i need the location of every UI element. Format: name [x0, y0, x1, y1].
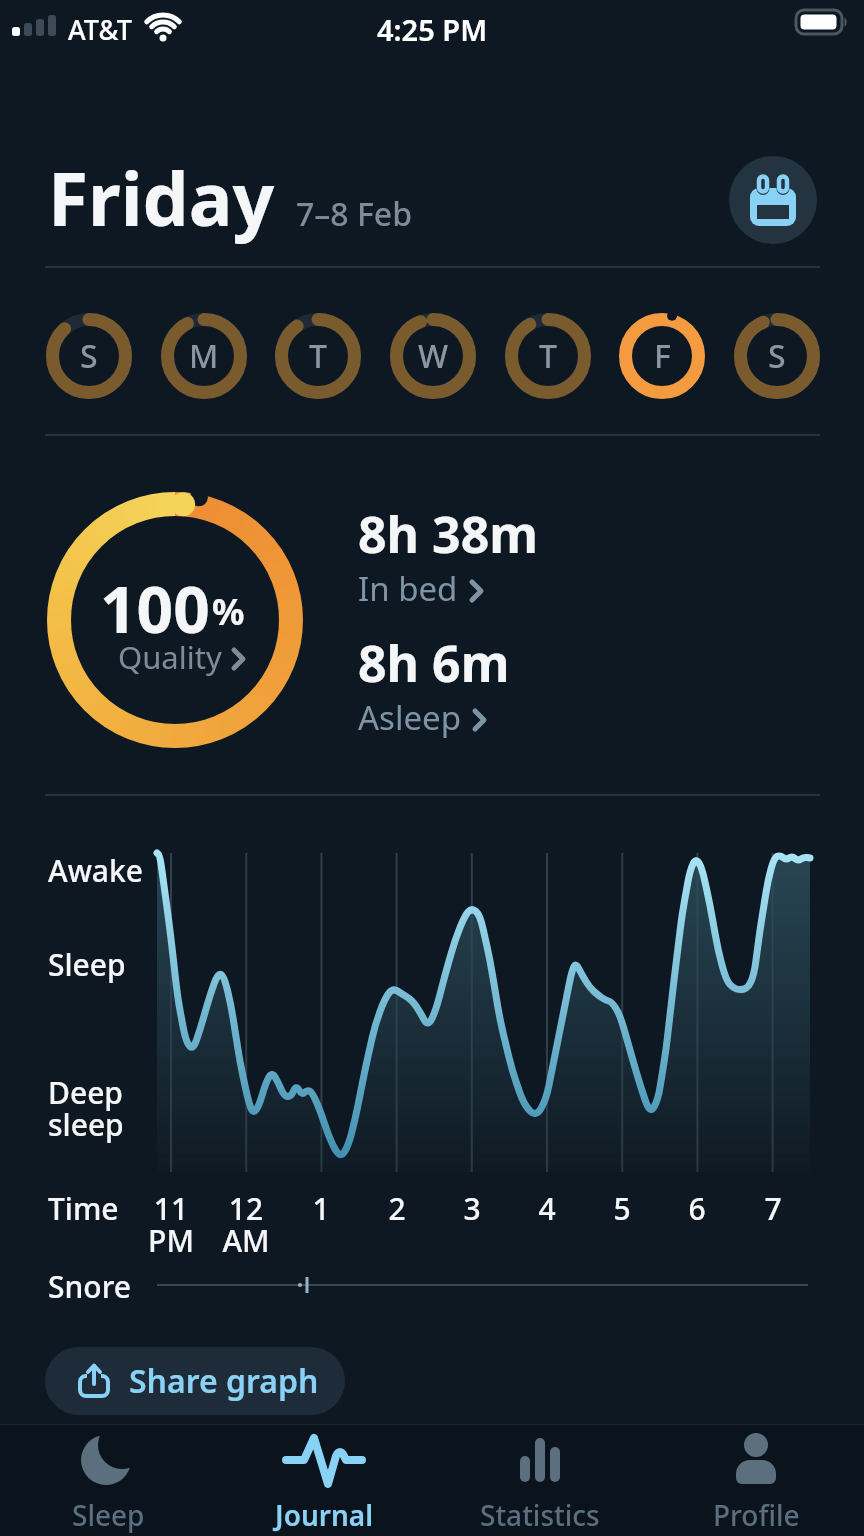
staticText: 4 [538, 1188, 556, 1229]
staticText: F [654, 334, 671, 378]
staticText: 4:25 PM [377, 10, 488, 49]
button[interactable]: S [45, 312, 133, 400]
button[interactable]: W [389, 312, 477, 400]
staticText: 3 [463, 1188, 481, 1229]
staticText: In bed [358, 566, 458, 611]
button[interactable]: F [618, 312, 706, 400]
button[interactable]: S [733, 312, 821, 400]
staticText: Profile [713, 1496, 800, 1534]
staticText: % [212, 587, 245, 636]
staticText: 8h 38m [358, 500, 539, 568]
staticText: 11 PM [148, 1188, 194, 1261]
staticText: S [80, 334, 98, 378]
staticText: Snore [48, 1266, 131, 1307]
staticText: 1 [312, 1188, 330, 1229]
staticText: 6 [688, 1188, 706, 1229]
staticText: W [418, 334, 449, 378]
staticText: Asleep [358, 695, 461, 740]
button[interactable]: Asleep [358, 695, 487, 740]
staticText: Quality [118, 636, 222, 678]
button[interactable] [729, 156, 817, 244]
staticText: S [768, 334, 786, 378]
staticText: Awake [48, 850, 144, 891]
staticText: Journal [275, 1496, 374, 1534]
button[interactable]: 100 [100, 565, 243, 652]
staticText: Friday [48, 148, 275, 247]
button[interactable]: M [160, 312, 248, 400]
button[interactable]: Profile [648, 1424, 864, 1536]
button[interactable]: Quality [118, 636, 246, 678]
staticText: T [309, 334, 327, 378]
staticText: Sleep [48, 944, 126, 985]
staticText: 100 [100, 565, 210, 652]
staticText: T [539, 334, 557, 378]
staticText: 7 [764, 1188, 782, 1229]
staticText: 7–8 Feb [296, 192, 413, 236]
staticText: 2 [388, 1188, 406, 1229]
staticText: Time [48, 1188, 119, 1229]
staticText: 8h 6m [358, 629, 510, 697]
staticText: Statistics [480, 1496, 600, 1534]
button[interactable]: Sleep [0, 1424, 216, 1536]
staticText: 5 [613, 1188, 631, 1229]
staticText: Sleep [72, 1496, 145, 1534]
staticText: 12 AM [222, 1188, 270, 1261]
staticText: Deep sleep [48, 1072, 124, 1145]
button[interactable]: Journal [216, 1424, 432, 1536]
staticText: Share graph [129, 1359, 319, 1403]
button[interactable]: In bed [358, 566, 484, 611]
button[interactable]: Share graph [45, 1347, 345, 1415]
button[interactable]: T [504, 312, 592, 400]
button[interactable]: T [274, 312, 362, 400]
staticText: M [189, 334, 219, 378]
staticText: AT&T [68, 11, 132, 48]
button[interactable]: Statistics [432, 1424, 648, 1536]
